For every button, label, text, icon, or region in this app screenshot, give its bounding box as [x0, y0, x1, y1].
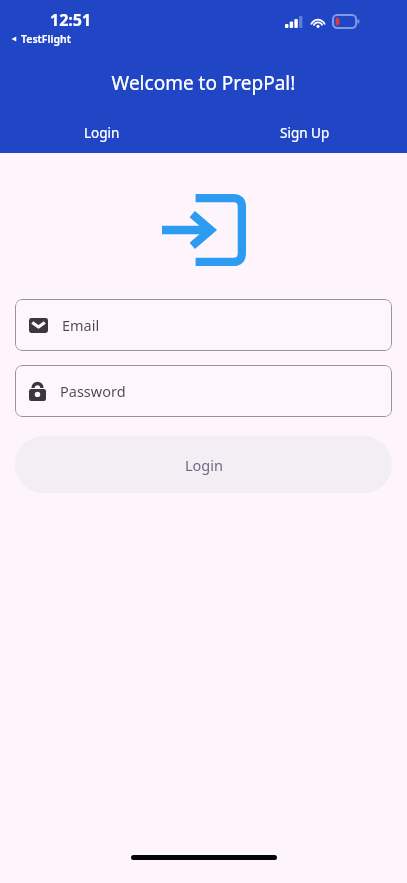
staticText: Login — [185, 455, 223, 475]
button[interactable]: Login — [15, 436, 392, 493]
button[interactable]: Sign Up — [203, 119, 407, 147]
button[interactable]: Email — [15, 299, 392, 351]
button[interactable]: Login — [0, 119, 203, 147]
staticText: Sign Up — [280, 124, 330, 142]
staticText: Email — [62, 315, 100, 335]
other: Home indicator — [131, 855, 277, 860]
staticText: 12:51 — [50, 9, 92, 31]
staticText: Welcome to PrepPal! — [0, 70, 407, 96]
other: Login — [162, 194, 246, 266]
staticText: TestFlight — [21, 32, 71, 46]
staticText: Password — [60, 381, 126, 401]
staticText: Login — [84, 124, 120, 142]
button[interactable]: Password — [15, 365, 392, 417]
